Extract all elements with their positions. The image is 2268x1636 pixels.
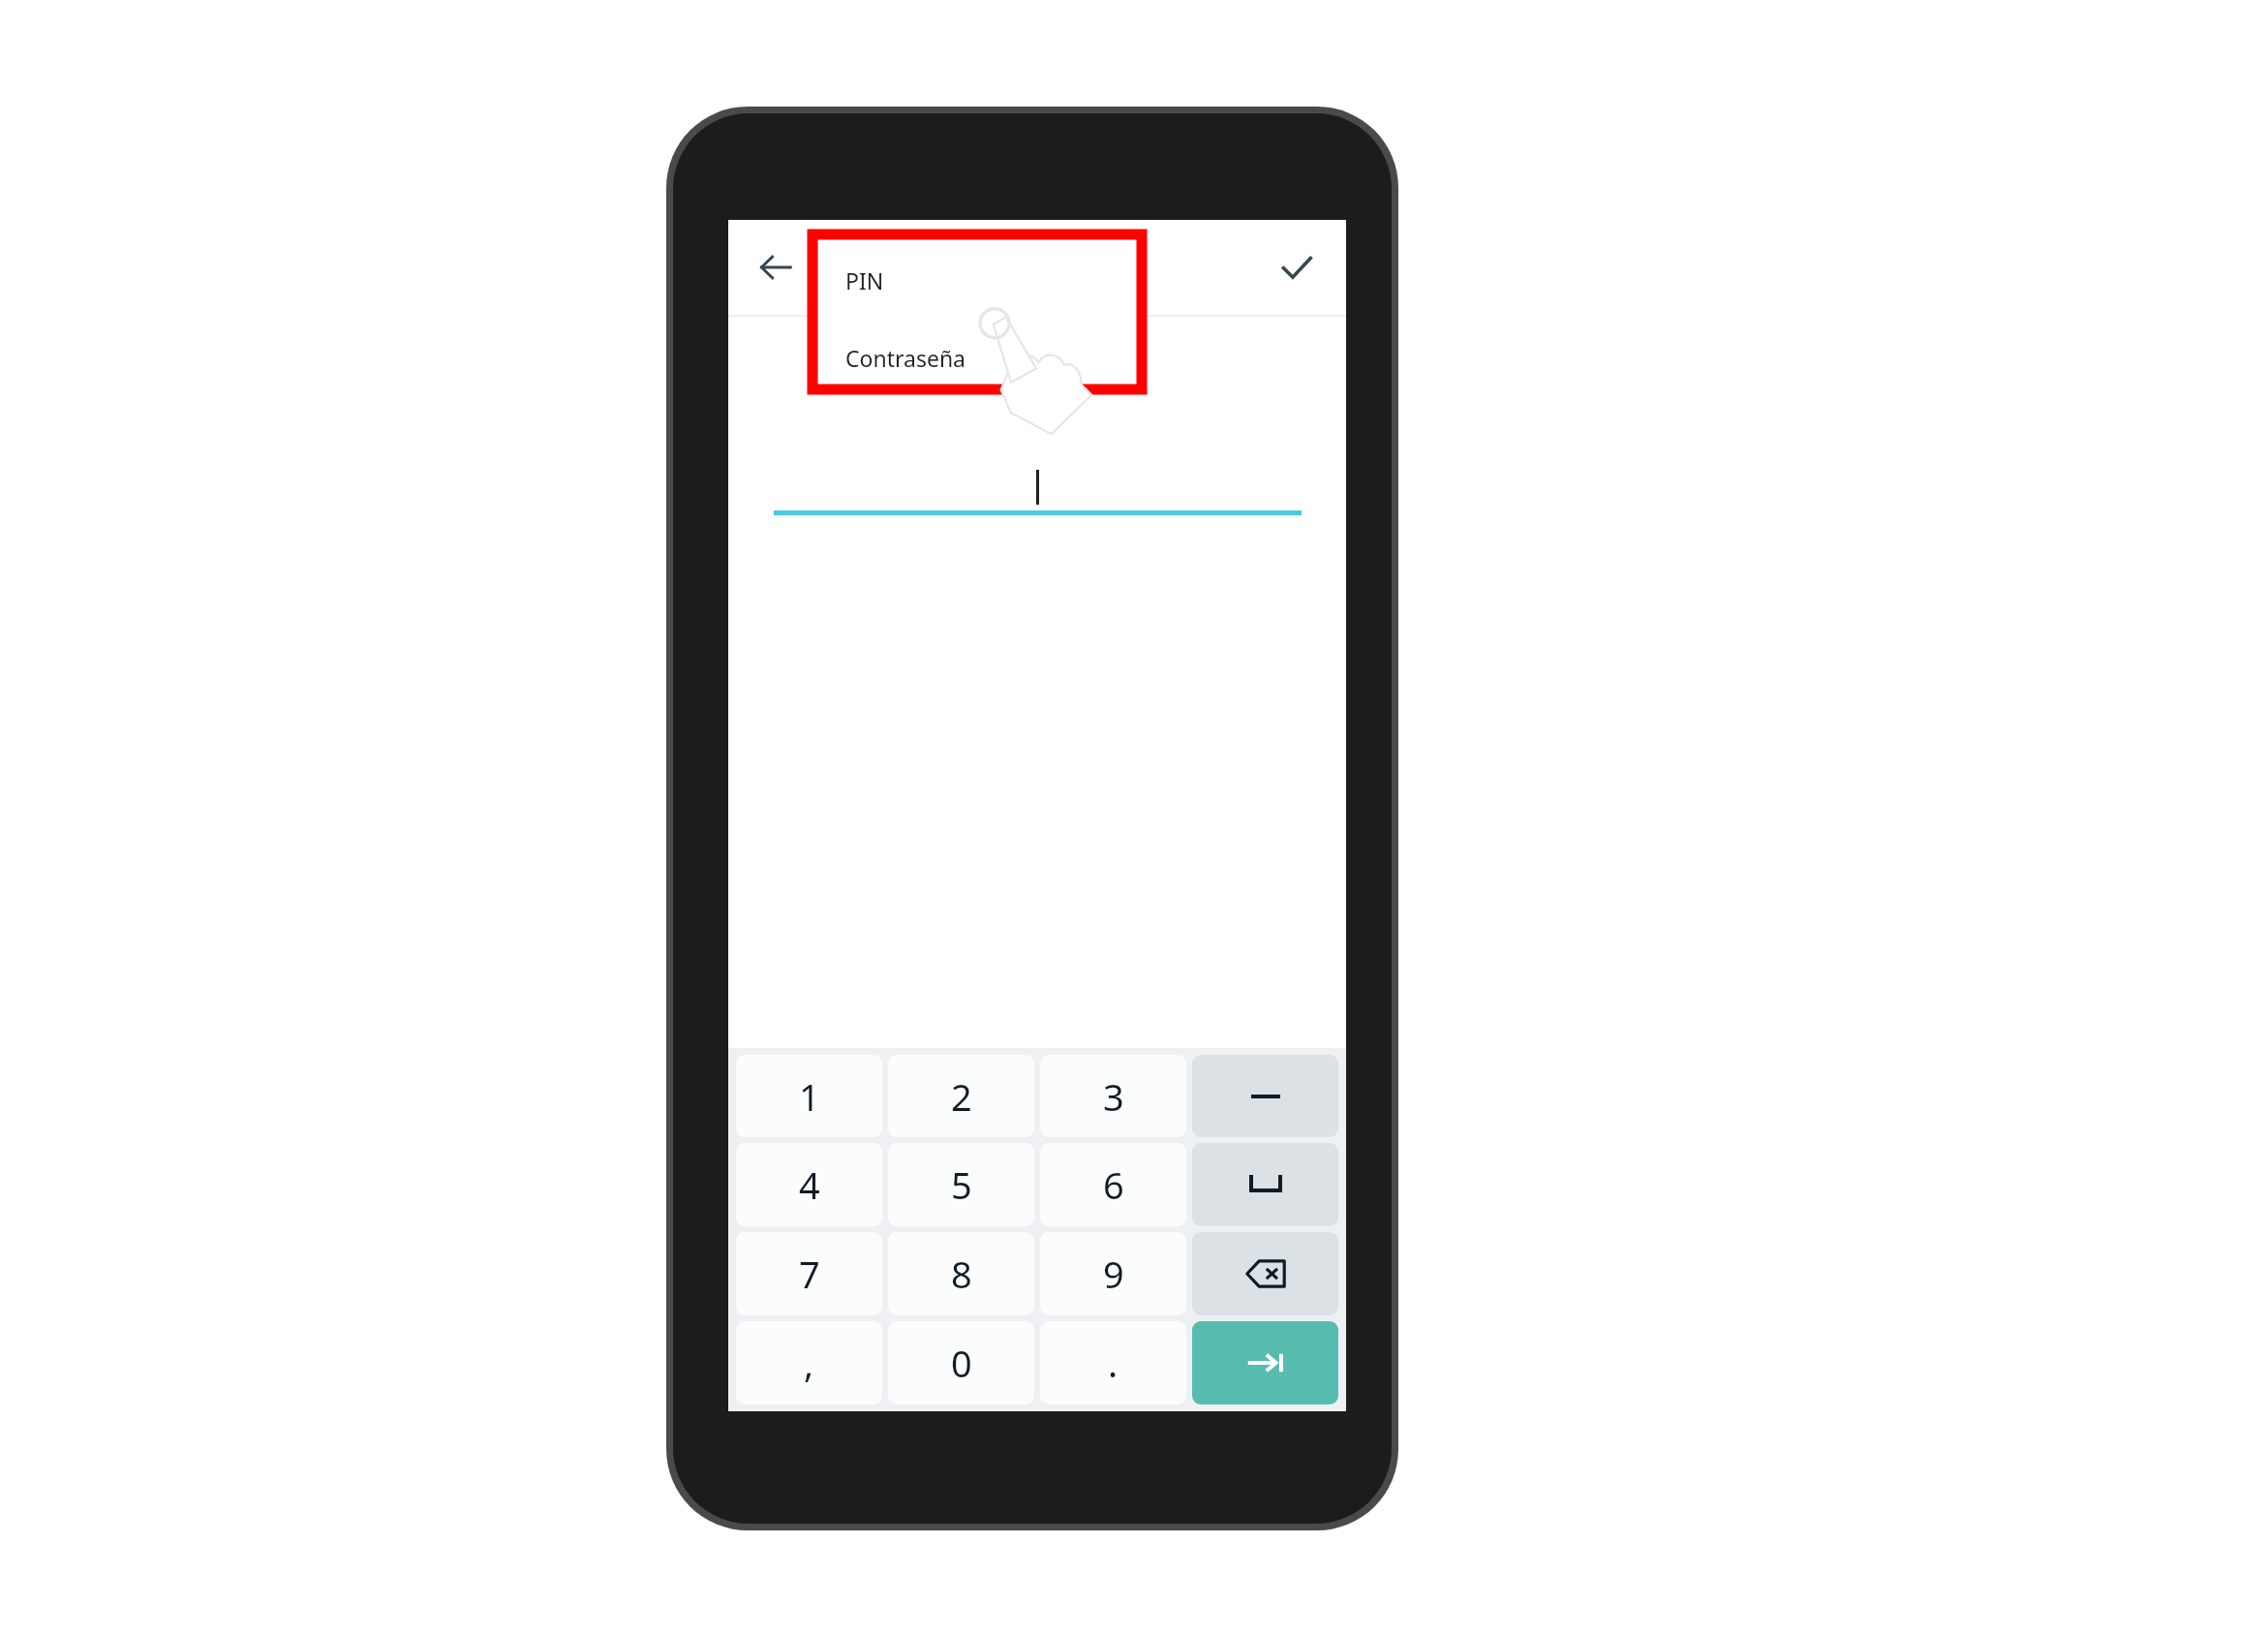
staticText: . [1108,1338,1119,1388]
button[interactable]: Confirm [1267,237,1327,297]
staticText: 3 [1103,1071,1124,1122]
staticText: 6 [1103,1159,1124,1210]
button[interactable]: 0 [888,1321,1034,1404]
button[interactable]: Back [746,237,806,297]
button[interactable]: 1 [736,1055,882,1137]
button[interactable]: 8 [888,1232,1034,1315]
staticText: 7 [799,1249,820,1299]
staticText: 5 [951,1159,972,1210]
button[interactable]: 3 [1040,1055,1186,1137]
button[interactable]: Enter [1192,1321,1338,1404]
button[interactable]: 2 [888,1055,1034,1137]
button[interactable]: 5 [888,1143,1034,1226]
button[interactable]: . [1040,1321,1186,1404]
button[interactable]: 7 [736,1232,882,1315]
staticText: 4 [799,1159,820,1210]
staticText: , [804,1338,814,1388]
staticText: 8 [951,1249,972,1299]
button[interactable]: 9 [1040,1232,1186,1315]
staticText: 0 [951,1338,972,1388]
staticText: Contraseña [845,343,966,373]
staticText: 1 [799,1071,820,1122]
staticText: 9 [1103,1249,1124,1299]
staticText: PIN [845,265,884,295]
button[interactable]: 4 [736,1143,882,1226]
staticText: Por un [1005,386,1069,415]
button[interactable]: 6 [1040,1143,1186,1226]
button[interactable]: , [736,1321,882,1404]
button[interactable]: Minus [1192,1055,1338,1137]
button[interactable]: Delete [1192,1232,1338,1315]
button[interactable]: Space [1192,1143,1338,1226]
staticText: 2 [951,1071,972,1122]
